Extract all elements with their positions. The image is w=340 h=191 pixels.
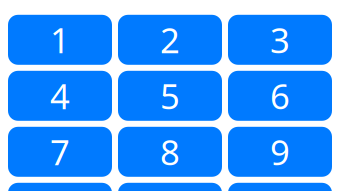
- button[interactable]: 12: [228, 183, 332, 191]
- staticText: 6: [270, 73, 290, 119]
- button[interactable]: 5: [118, 71, 222, 121]
- button[interactable]: 3: [228, 15, 332, 65]
- button[interactable]: 9: [228, 127, 332, 177]
- button[interactable]: 8: [118, 127, 222, 177]
- button[interactable]: 2: [118, 15, 222, 65]
- button[interactable]: 10: [8, 183, 112, 191]
- staticText: 2: [160, 17, 180, 63]
- staticText: 5: [160, 73, 180, 119]
- button[interactable]: 6: [228, 71, 332, 121]
- button[interactable]: 11: [118, 183, 222, 191]
- button[interactable]: 7: [8, 127, 112, 177]
- staticText: 3: [270, 17, 290, 63]
- button[interactable]: 4: [8, 71, 112, 121]
- staticText: 8: [160, 129, 180, 175]
- staticText: 1: [50, 17, 70, 63]
- button[interactable]: 1: [8, 15, 112, 65]
- staticText: 7: [50, 129, 70, 175]
- staticText: 9: [270, 129, 290, 175]
- staticText: 4: [50, 73, 70, 119]
